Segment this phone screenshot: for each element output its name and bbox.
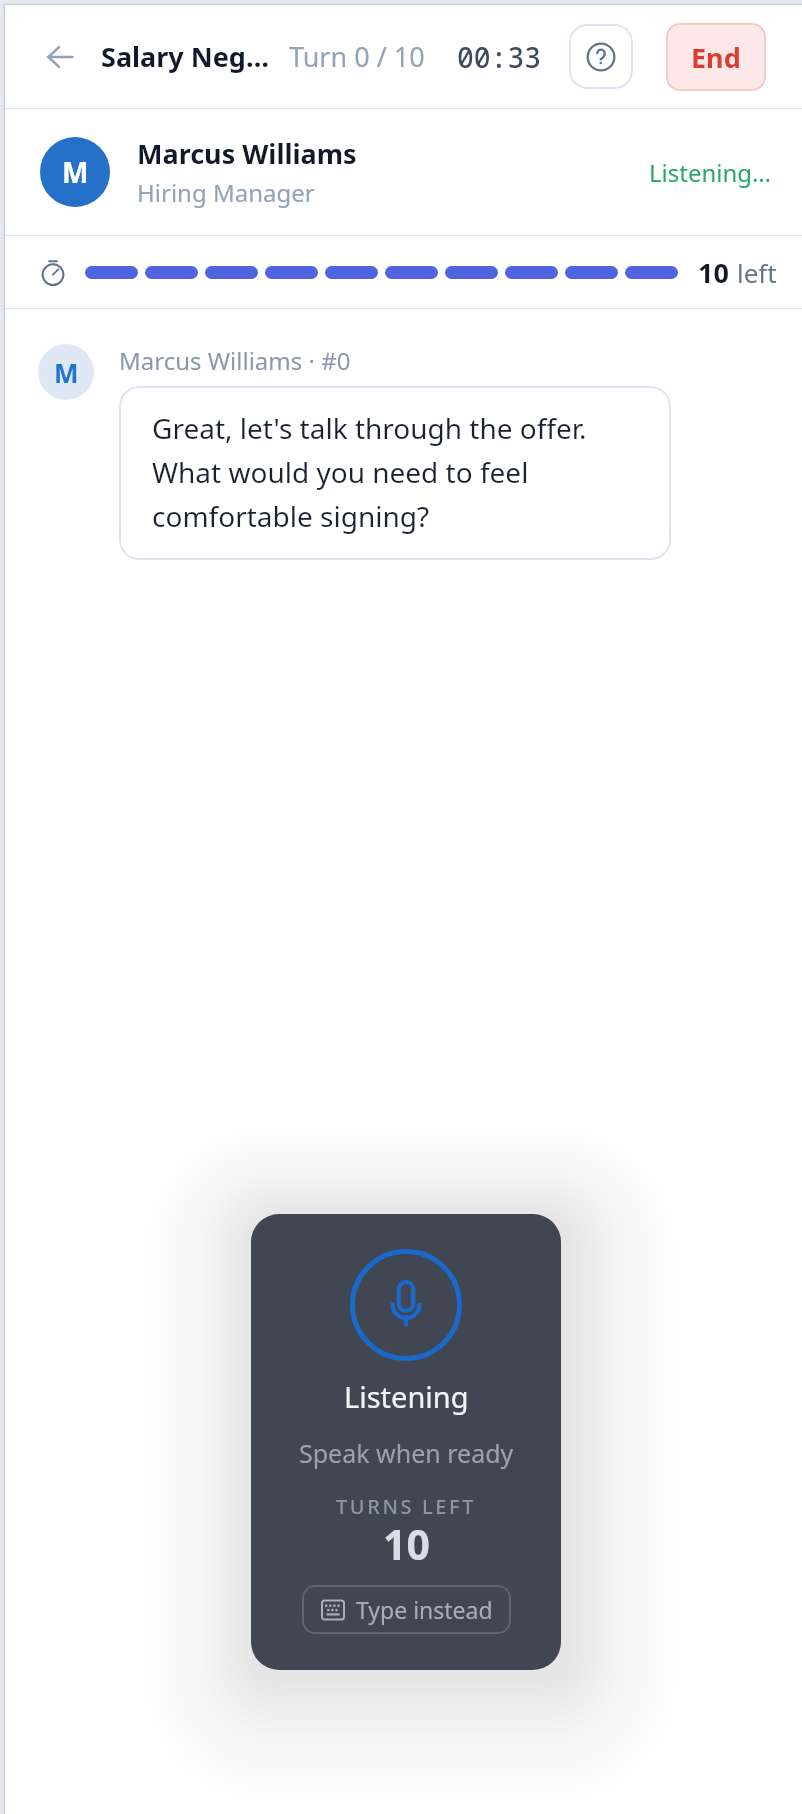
staticText: 10	[383, 1516, 430, 1572]
button[interactable]: Help	[569, 24, 633, 89]
staticText: Listening	[344, 1377, 469, 1416]
staticText: M	[62, 153, 89, 191]
staticText: Type instead	[356, 1594, 493, 1625]
staticText: Great, let's talk through the offer. Wha…	[152, 409, 587, 535]
staticText: Listening…	[649, 156, 772, 189]
staticText: 10	[698, 254, 729, 291]
staticText: left	[737, 255, 777, 290]
button[interactable]: Back	[47, 35, 91, 79]
staticText: Marcus Williams · #0	[119, 344, 351, 377]
staticText: End	[691, 39, 741, 76]
staticText: Speak when ready	[299, 1436, 514, 1470]
button[interactable]: Type instead	[302, 1585, 511, 1634]
staticText: Salary Neg…	[101, 38, 269, 75]
staticText: TURNS LEFT	[336, 1493, 476, 1520]
staticText: M	[54, 355, 79, 390]
button[interactable]: End	[666, 23, 766, 91]
button[interactable]: Listening	[251, 1214, 561, 1670]
staticText: 00:33	[457, 38, 542, 76]
staticText: Marcus Williams	[137, 135, 357, 172]
staticText: Hiring Manager	[137, 176, 315, 209]
staticText: Turn 0 / 10	[289, 38, 425, 75]
